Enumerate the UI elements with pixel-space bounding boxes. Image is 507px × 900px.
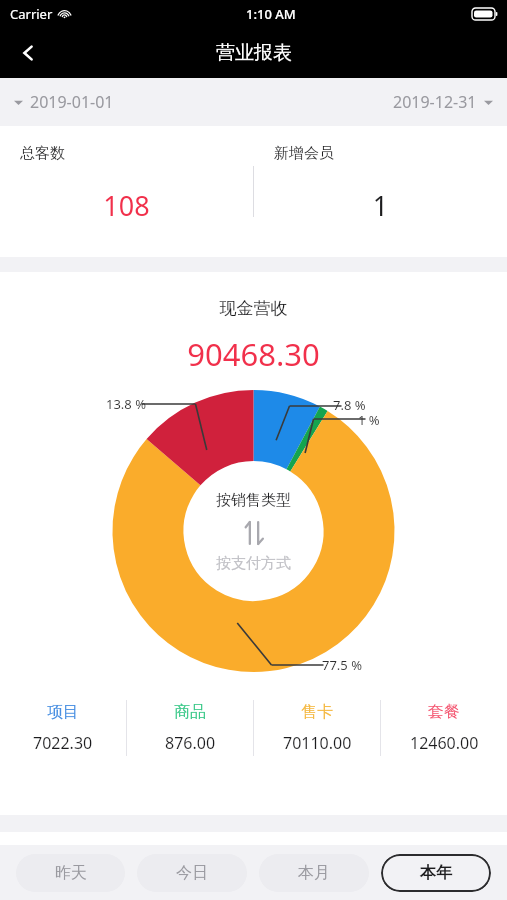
staticText: 12460.00 bbox=[410, 732, 479, 754]
staticText: 营业报表 bbox=[216, 41, 292, 65]
button[interactable]: 售卡 bbox=[254, 689, 380, 767]
button[interactable]: 2019-12-31 bbox=[393, 91, 493, 113]
staticText: 108 bbox=[0, 187, 253, 224]
staticText: 90468.30 bbox=[0, 333, 507, 375]
button[interactable]: Back bbox=[0, 28, 56, 78]
staticText: 2019-12-31 bbox=[393, 91, 477, 113]
staticText: 70110.00 bbox=[283, 732, 352, 754]
staticText: 1 % bbox=[358, 411, 380, 429]
staticText: 现金营收 bbox=[0, 298, 507, 319]
staticText: 7022.30 bbox=[33, 732, 93, 754]
staticText: 总客数 bbox=[20, 144, 65, 163]
staticText: 商品 bbox=[174, 702, 206, 722]
staticText: Carrier bbox=[10, 5, 53, 23]
staticText: 套餐 bbox=[428, 702, 460, 722]
button[interactable]: 总客数 bbox=[0, 126, 253, 257]
button[interactable]: 按销售类型 bbox=[216, 491, 291, 573]
staticText: 876.00 bbox=[165, 732, 216, 754]
button[interactable]: 项目 bbox=[0, 689, 126, 767]
staticText: 1:10 AM bbox=[246, 5, 296, 23]
staticText: 1 bbox=[254, 187, 507, 224]
button[interactable]: 2019-01-01 bbox=[14, 91, 114, 113]
button[interactable]: 本年 bbox=[381, 854, 491, 892]
staticText: 新增会员 bbox=[274, 144, 334, 163]
staticText: 今日 bbox=[176, 863, 208, 883]
staticText: 项目 bbox=[47, 702, 79, 722]
staticText: 2019-01-01 bbox=[30, 91, 114, 113]
button[interactable]: 商品 bbox=[127, 689, 253, 767]
other: Switch chart bbox=[241, 520, 267, 546]
staticText: 售卡 bbox=[301, 702, 333, 722]
button[interactable]: 昨天 bbox=[16, 854, 125, 892]
staticText: 按销售类型 bbox=[216, 491, 291, 510]
button[interactable]: 套餐 bbox=[381, 689, 507, 767]
staticText: 7.8 % bbox=[333, 396, 366, 414]
staticText: 本月 bbox=[298, 863, 330, 883]
staticText: 昨天 bbox=[55, 863, 87, 883]
button[interactable]: 今日 bbox=[137, 854, 247, 892]
staticText: 按支付方式 bbox=[216, 554, 291, 573]
staticText: 本年 bbox=[420, 863, 452, 883]
button[interactable]: 本月 bbox=[259, 854, 369, 892]
staticText: 77.5 % bbox=[322, 656, 362, 674]
button[interactable]: 新增会员 bbox=[254, 126, 507, 257]
staticText: 13.8 % bbox=[106, 395, 146, 413]
